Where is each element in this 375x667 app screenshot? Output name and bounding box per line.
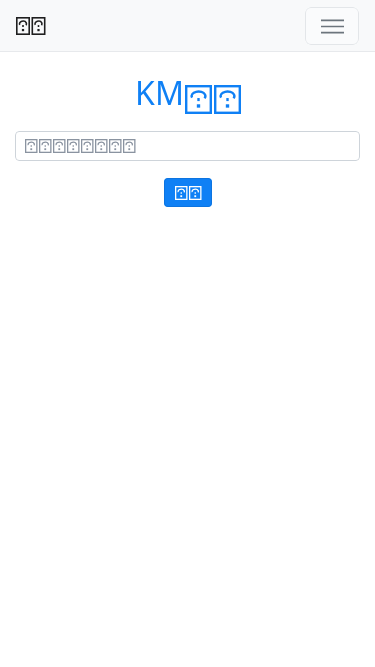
staticText: KM	[135, 71, 184, 115]
button[interactable]	[16, 17, 46, 35]
button[interactable]: Search	[164, 178, 212, 207]
button[interactable]: Menu	[305, 7, 359, 45]
button[interactable]	[15, 131, 360, 161]
